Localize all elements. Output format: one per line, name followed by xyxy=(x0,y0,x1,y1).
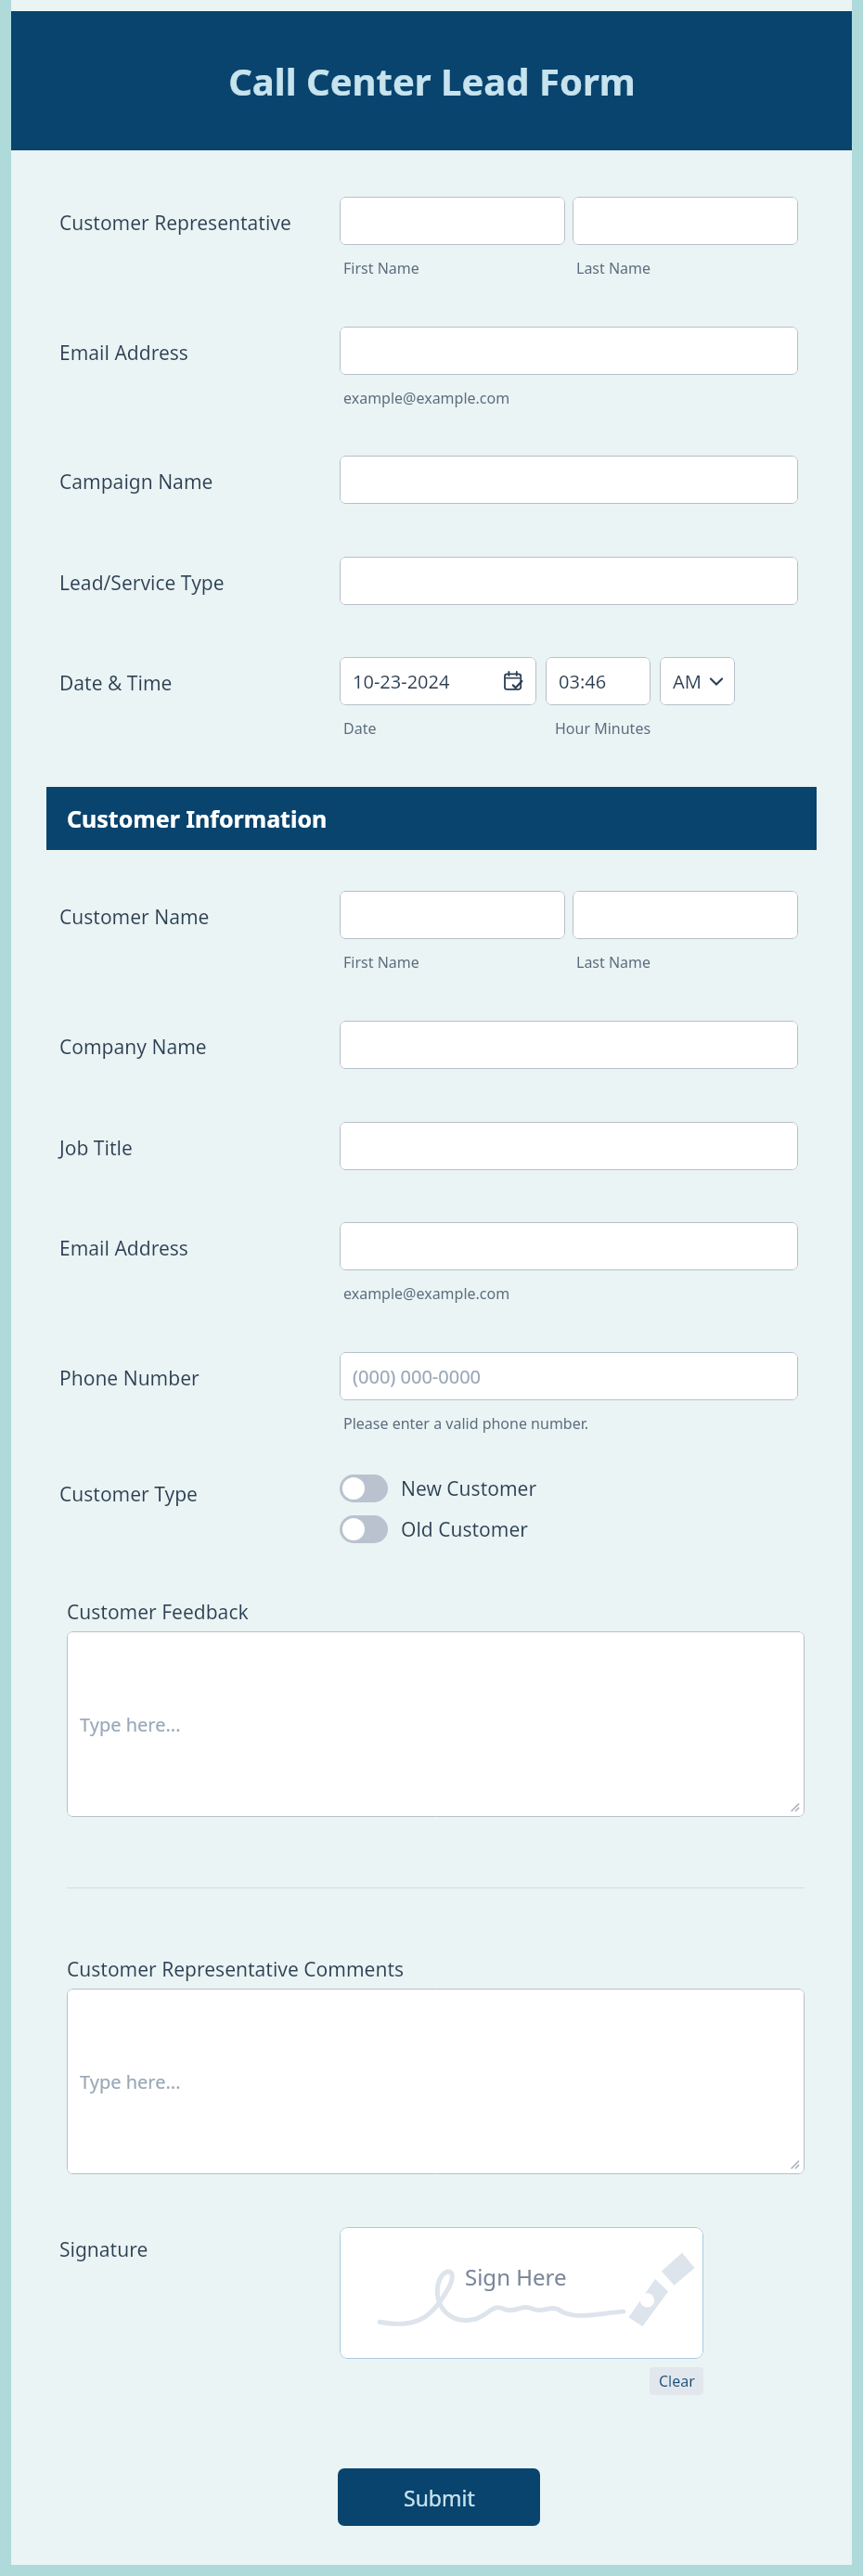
button[interactable]: Job Title xyxy=(340,1122,798,1170)
staticText: Old Customer xyxy=(401,1516,528,1543)
staticText: Email Address xyxy=(59,340,188,367)
button[interactable]: Campaign Name xyxy=(340,456,798,504)
staticText: Signature xyxy=(59,2236,148,2263)
staticText: Call Center Lead Form xyxy=(228,56,636,106)
button[interactable]: Clear xyxy=(650,2367,703,2395)
staticText: Customer Representative Comments xyxy=(67,1956,405,1983)
button[interactable]: Company Name xyxy=(340,1021,798,1069)
staticText: Type here... xyxy=(80,1712,181,1737)
button[interactable]: Phone Number xyxy=(340,1352,798,1400)
staticText: New Customer xyxy=(401,1475,537,1502)
button[interactable]: Old Customer xyxy=(340,1513,528,1545)
staticText: Clear xyxy=(659,2371,695,2391)
staticText: Last Name xyxy=(576,258,651,278)
staticText: (000) 000-0000 xyxy=(353,1364,482,1389)
staticText: Sign Here xyxy=(465,2261,567,2292)
button[interactable]: Lead or Service Type xyxy=(340,557,798,605)
button[interactable]: Hour Minutes xyxy=(546,657,650,705)
staticText: Hour Minutes xyxy=(555,718,651,739)
button[interactable]: Email Address xyxy=(340,327,798,375)
button[interactable]: Customer Representative Comments xyxy=(67,1989,805,2174)
staticText: Type here... xyxy=(80,2069,181,2094)
staticText: Last Name xyxy=(576,952,651,972)
staticText: First Name xyxy=(343,952,419,972)
staticText: 03:46 xyxy=(559,669,607,694)
staticText: Lead/Service Type xyxy=(59,570,225,597)
button[interactable]: New Customer xyxy=(340,1473,537,1504)
staticText: example@example.com xyxy=(343,388,510,408)
button[interactable]: Submit xyxy=(338,2468,540,2526)
button[interactable]: Customer First Name xyxy=(340,891,565,939)
staticText: Date & Time xyxy=(59,670,173,697)
button[interactable]: Customer Email Address xyxy=(340,1222,798,1270)
button[interactable]: First Name xyxy=(340,197,565,245)
button[interactable]: AM or PM xyxy=(660,657,735,705)
staticText: Company Name xyxy=(59,1034,207,1061)
staticText: Campaign Name xyxy=(59,469,213,496)
staticText: Customer Type xyxy=(59,1481,198,1508)
staticText: example@example.com xyxy=(343,1283,510,1304)
staticText: Customer Representative xyxy=(59,210,291,237)
staticText: Customer Name xyxy=(59,904,210,931)
staticText: Job Title xyxy=(59,1135,133,1162)
button[interactable]: Customer Feedback xyxy=(67,1631,805,1817)
staticText: Date xyxy=(343,718,377,739)
button[interactable]: Last Name xyxy=(573,197,798,245)
staticText: Submit xyxy=(404,2483,475,2512)
button[interactable]: Date xyxy=(340,657,536,705)
staticText: 10-23-2024 xyxy=(353,669,450,694)
staticText: AM xyxy=(673,669,702,694)
staticText: Phone Number xyxy=(59,1365,200,1392)
staticText: Customer Information xyxy=(67,803,328,834)
staticText: Email Address xyxy=(59,1235,188,1262)
button[interactable]: Customer Last Name xyxy=(573,891,798,939)
staticText: Customer Feedback xyxy=(67,1599,249,1626)
staticText: First Name xyxy=(343,258,419,278)
staticText: Please enter a valid phone number. xyxy=(343,1413,589,1434)
button[interactable]: Signature pad xyxy=(340,2227,703,2359)
